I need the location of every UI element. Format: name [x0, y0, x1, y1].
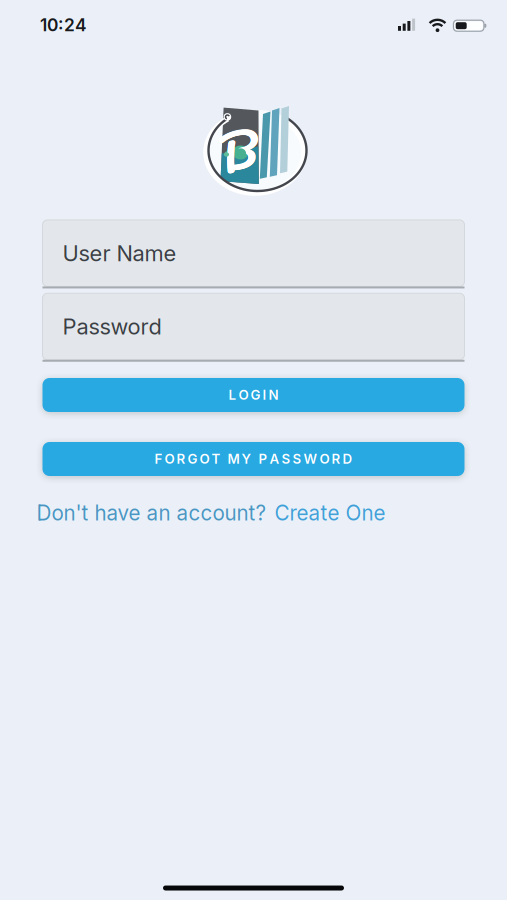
- button[interactable]: L O G I N: [42, 378, 464, 412]
- staticText: User Name: [62, 240, 176, 266]
- button[interactable]: Password: [42, 293, 464, 362]
- staticText: L O G I N: [228, 387, 278, 403]
- staticText: F O R G O T M Y P A S S W O R D: [154, 451, 352, 467]
- staticText: B: [220, 111, 257, 190]
- staticText: B: [220, 110, 257, 190]
- staticText: Don't have an account?: [36, 500, 266, 525]
- button[interactable]: F O R G O T M Y P A S S W O R D: [42, 442, 464, 476]
- staticText: B: [220, 110, 257, 190]
- button[interactable]: Create One: [274, 500, 385, 525]
- staticText: 10:24: [40, 14, 87, 35]
- staticText: B: [220, 110, 257, 189]
- staticText: B: [220, 110, 257, 190]
- staticText: Password: [62, 313, 161, 340]
- staticText: Create One: [274, 500, 385, 525]
- button[interactable]: User Name: [42, 220, 464, 288]
